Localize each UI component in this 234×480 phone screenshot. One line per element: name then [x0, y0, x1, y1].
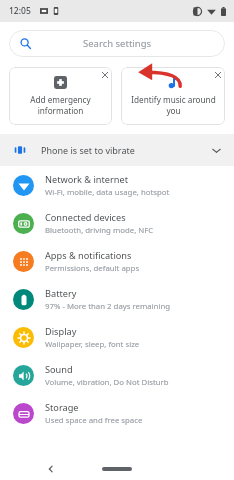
staticText: Phone is set to vibrate — [41, 144, 135, 156]
button[interactable]: Sound — [0, 356, 234, 394]
staticText: Connected devices — [45, 211, 126, 224]
button[interactable]: Dismiss suggestion — [97, 67, 112, 82]
staticText: Used space and free space — [45, 415, 143, 426]
button[interactable]: Connected devices — [0, 204, 234, 242]
button[interactable]: Network & internet — [0, 166, 234, 204]
staticText: Permissions, default apps — [45, 263, 140, 274]
button[interactable]: Apps & notifications — [0, 242, 234, 280]
button[interactable]: Home — [102, 467, 132, 471]
staticText: 97% - More than 2 days remaining — [45, 301, 171, 312]
staticText: Volume, vibration, Do Not Disturb — [45, 377, 169, 388]
staticText: Battery — [45, 287, 77, 300]
staticText: Identify music around you — [131, 94, 216, 116]
staticText: Add emergency information — [30, 94, 91, 116]
staticText: Wi-Fi, mobile, data usage, hotspot — [45, 187, 170, 198]
staticText: Storage — [45, 401, 79, 414]
button[interactable]: Add emergency information — [9, 67, 112, 125]
button[interactable]: Storage — [0, 394, 234, 432]
staticText: Sound — [45, 363, 73, 376]
button[interactable]: Phone is set to vibrate — [0, 134, 234, 166]
button[interactable]: Display — [0, 318, 234, 356]
staticText: Network & internet — [45, 173, 128, 186]
button[interactable]: Dismiss suggestion — [210, 67, 225, 82]
button[interactable]: Battery — [0, 280, 234, 318]
button[interactable]: Search settings — [9, 30, 225, 57]
staticText: Search settings — [83, 37, 152, 50]
button[interactable]: Back — [42, 460, 60, 478]
staticText: Wallpaper, sleep, font size — [45, 339, 140, 350]
button[interactable]: Identify music around you — [121, 67, 225, 125]
staticText: Bluetooth, driving mode, NFC — [45, 225, 154, 236]
staticText: Display — [45, 325, 77, 338]
staticText: Apps & notifications — [45, 249, 132, 262]
staticText: 12:05 — [9, 5, 31, 17]
